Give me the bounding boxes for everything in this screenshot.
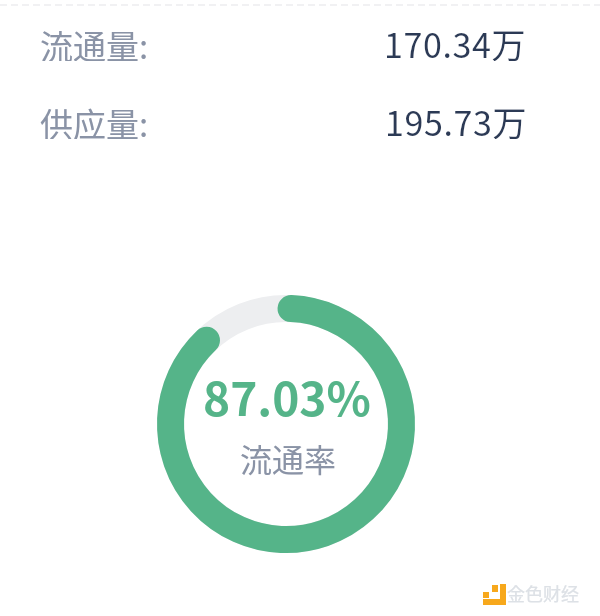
- staticText: 170.34万: [384, 19, 527, 61]
- button[interactable]: 金色财经: [481, 580, 579, 606]
- staticText: 流通率: [240, 435, 337, 481]
- staticText: 195.73万: [385, 97, 528, 139]
- staticText: 87.03%: [203, 363, 371, 430]
- staticText: 流通量:: [40, 21, 149, 61]
- staticText: 供应量:: [40, 99, 149, 139]
- staticText: 金色财经: [507, 580, 579, 606]
